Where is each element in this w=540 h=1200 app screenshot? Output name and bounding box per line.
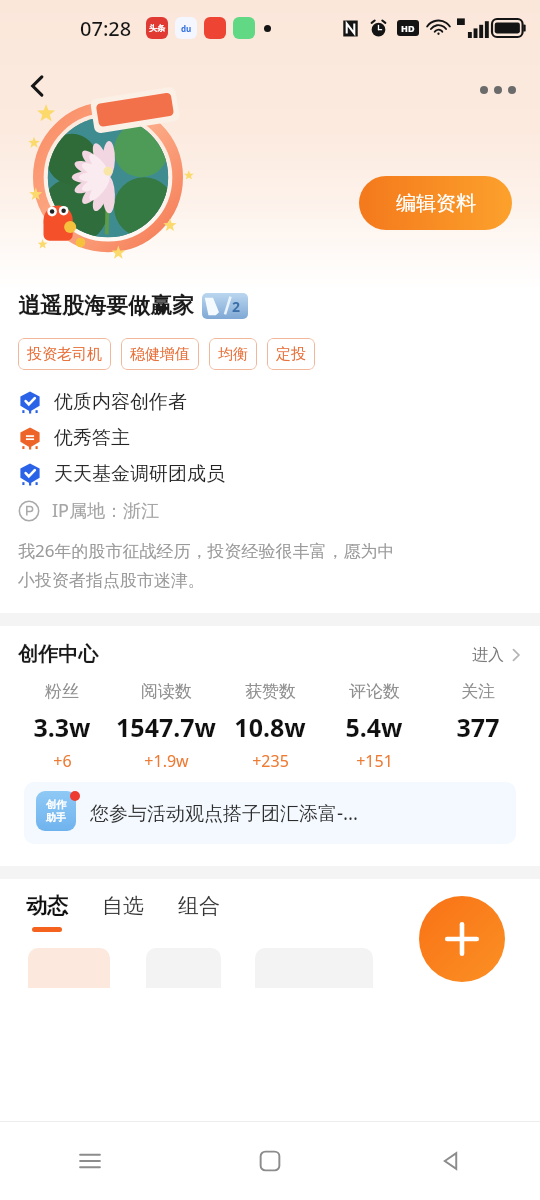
staticText: 2 xyxy=(232,297,241,316)
button[interactable]: 创作 xyxy=(24,782,516,844)
button[interactable]: 自选 xyxy=(96,893,150,927)
button[interactable]: 优秀答主 xyxy=(0,426,540,450)
staticText: 组合 xyxy=(178,893,220,919)
staticText: +151 xyxy=(356,750,393,772)
button[interactable]: 头像 xyxy=(22,86,194,258)
staticText: 07:28 xyxy=(80,15,132,42)
button[interactable]: 阅读数 xyxy=(114,681,218,772)
staticText: 优质内容创作者 xyxy=(54,390,187,414)
button[interactable]: 编辑资料 xyxy=(359,176,512,230)
button[interactable]: 动态 xyxy=(20,893,74,932)
button[interactable]: 天天基金调研团成员 xyxy=(0,462,540,486)
staticText: 粉丝 xyxy=(45,681,79,702)
button[interactable]: 获赞数 xyxy=(218,681,322,772)
button[interactable]: 投资老司机 xyxy=(18,338,111,370)
staticText: 定投 xyxy=(276,345,306,364)
staticText: 天天基金调研团成员 xyxy=(54,462,225,486)
staticText: HD xyxy=(401,22,415,34)
staticText: 1547.7w xyxy=(114,710,218,744)
button[interactable]: 评论数 xyxy=(322,681,426,772)
staticText: 获赞数 xyxy=(245,681,296,702)
staticText: du xyxy=(181,23,192,34)
button[interactable]: 更多 xyxy=(470,70,526,110)
button[interactable] xyxy=(28,948,110,988)
button[interactable]: 粉丝 xyxy=(10,681,114,772)
staticText: 评论数 xyxy=(349,681,400,702)
staticText: 我26年的股市征战经历，投资经验很丰富，愿为中 xyxy=(18,539,395,562)
staticText: 投资老司机 xyxy=(27,345,102,364)
button[interactable]: 最近任务 xyxy=(0,1122,180,1200)
staticText: 377 xyxy=(426,710,530,744)
staticText: 均衡 xyxy=(218,345,248,364)
staticText: 编辑资料 xyxy=(396,191,476,216)
button[interactable]: 定投 xyxy=(267,338,315,370)
staticText: 您参与活动观点搭子团汇添富-… xyxy=(90,800,359,826)
staticText: 5.4w xyxy=(322,710,426,744)
staticText: +6 xyxy=(53,750,72,772)
button[interactable]: 优质内容创作者 xyxy=(0,390,540,414)
button[interactable]: 创作中心 xyxy=(0,642,540,667)
staticText: 自选 xyxy=(102,893,144,919)
staticText: 头条 xyxy=(149,23,165,33)
staticText: 动态 xyxy=(26,893,68,919)
button[interactable]: 关注 xyxy=(426,681,530,750)
staticText: 稳健增值 xyxy=(130,345,190,364)
staticText: 创作中心 xyxy=(18,642,98,667)
staticText: 创作 xyxy=(46,798,66,811)
staticText: 小投资者指点股市迷津。 xyxy=(18,570,205,591)
button[interactable]: 返回 xyxy=(360,1122,540,1200)
staticText: 10.8w xyxy=(218,710,322,744)
staticText: 进入 xyxy=(472,645,504,665)
button[interactable]: 主页 xyxy=(180,1122,360,1200)
staticText: IP属地：浙江 xyxy=(52,498,159,523)
button[interactable]: 组合 xyxy=(172,893,226,927)
staticText: 优秀答主 xyxy=(54,426,130,450)
staticText: 阅读数 xyxy=(141,681,192,702)
staticText: 3.3w xyxy=(10,710,114,744)
button[interactable]: 均衡 xyxy=(209,338,257,370)
staticText: +1.9w xyxy=(144,750,189,772)
staticText: 关注 xyxy=(461,681,495,702)
button[interactable]: 发布 xyxy=(419,896,505,982)
button[interactable]: 稳健增值 xyxy=(121,338,199,370)
staticText: 逍遥股海要做赢家 xyxy=(18,292,194,320)
staticText: 助手 xyxy=(46,811,66,824)
button[interactable]: 返回 xyxy=(14,62,62,110)
staticText: +235 xyxy=(252,750,289,772)
